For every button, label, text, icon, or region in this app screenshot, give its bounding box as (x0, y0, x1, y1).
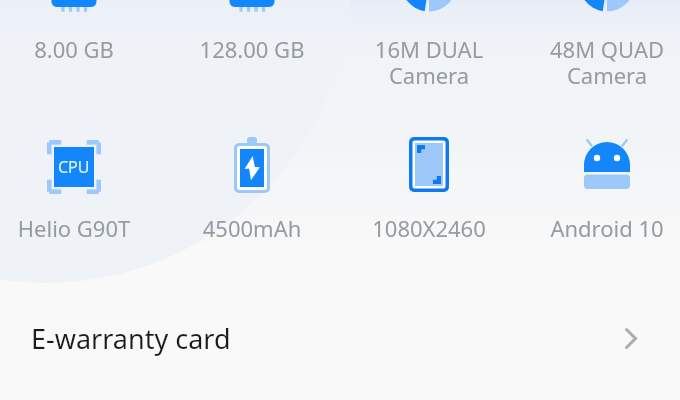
other: Open E-warranty card (625, 328, 637, 349)
staticText: 128.00 GB (162, 34, 342, 64)
staticText: Helio G90T (0, 213, 164, 243)
staticText: 8.00 GB (0, 34, 164, 64)
staticText: 1080X2460 (339, 213, 519, 243)
staticText: CPU (58, 156, 90, 178)
staticText: 48M QUAD Camera (517, 34, 680, 91)
other: Camera (399, 0, 459, 14)
other: Display resolution (401, 137, 457, 193)
other: Memory (225, 0, 279, 19)
staticText: Android 10 (517, 213, 680, 243)
staticText: 4500mAh (162, 213, 342, 243)
other: Processor (47, 140, 101, 194)
other: Battery (223, 135, 281, 193)
other: Camera (577, 0, 637, 14)
staticText: E-warranty card (31, 320, 231, 357)
other: Memory (47, 0, 101, 19)
other: Android version (579, 138, 635, 194)
staticText: 16M DUAL Camera (339, 34, 519, 91)
button[interactable]: E-warranty card (0, 298, 680, 378)
